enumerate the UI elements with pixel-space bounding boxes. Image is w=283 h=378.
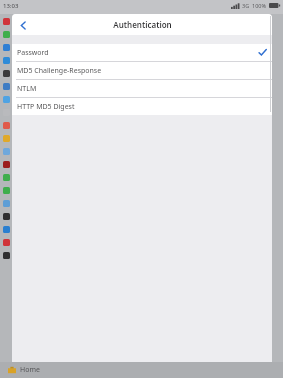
staticText: Password bbox=[17, 48, 49, 58]
staticText: HTTP MD5 Digest bbox=[17, 102, 75, 112]
staticText: 3G bbox=[242, 2, 250, 9]
staticText: Authentication bbox=[113, 19, 172, 30]
staticText: MD5 Challenge-Response bbox=[17, 66, 102, 76]
button[interactable]: Home bbox=[6, 362, 42, 378]
button[interactable]: Back bbox=[14, 16, 32, 34]
button[interactable]: MD5 Challenge-Response bbox=[12, 62, 272, 79]
button[interactable]: NTLM bbox=[12, 80, 272, 97]
staticText: NTLM bbox=[17, 84, 37, 94]
staticText: Home bbox=[20, 365, 40, 375]
button[interactable]: HTTP MD5 Digest bbox=[12, 98, 272, 115]
button[interactable]: Password bbox=[12, 44, 272, 61]
staticText: 13:03 bbox=[3, 2, 19, 10]
staticText: 100% bbox=[252, 2, 267, 9]
